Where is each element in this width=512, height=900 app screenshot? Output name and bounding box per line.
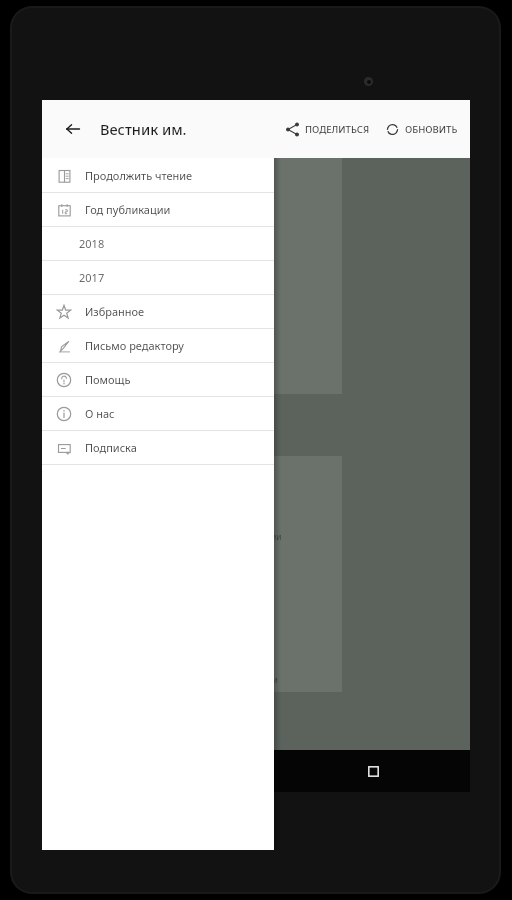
staticText: 2018 (79, 236, 105, 251)
staticText: Избранное (85, 304, 145, 319)
button[interactable]: Подписка (42, 431, 274, 464)
staticText: покенов при (198, 259, 251, 271)
staticText: Год публикации (85, 202, 171, 217)
button[interactable]: ОБНОВИТЬ (380, 115, 462, 144)
staticText: Помощь (85, 372, 131, 387)
staticText: Продолжить чтение (85, 168, 193, 183)
button[interactable]: О нас (42, 397, 274, 430)
button[interactable]: Recent apps (353, 751, 393, 791)
staticText: 2017 (79, 270, 105, 285)
staticText: номере: (198, 181, 234, 193)
staticText: 7/2018 (198, 461, 231, 475)
staticText: ионных пищевых (198, 324, 271, 336)
button[interactable]: Помощь (42, 363, 274, 396)
staticText: аундодифицита, (198, 285, 266, 297)
button[interactable]: Письмо редактору (42, 329, 274, 362)
button[interactable]: 2017 (42, 261, 274, 294)
staticText: ное 3d металлов (198, 220, 268, 232)
staticText: ПОДЕЛИТЬСЯ (305, 123, 370, 136)
button[interactable]: Год публикации (42, 193, 274, 226)
staticText: Письмо редактору (85, 338, 184, 353)
staticText: Подписка (85, 440, 137, 455)
staticText: ОБНОВИТЬ (405, 123, 458, 136)
staticText: О нас (85, 406, 115, 421)
staticText: Вестник им. акад. И.П. П… (100, 119, 190, 139)
button[interactable]: 2018 (42, 227, 274, 260)
button[interactable]: Избранное (42, 295, 274, 328)
staticText: чнальным развитии (198, 531, 282, 543)
button[interactable]: ПОДЕЛИТЬСЯ (280, 115, 374, 144)
staticText: электромиографии (198, 674, 278, 686)
button[interactable]: Back (56, 112, 90, 146)
button[interactable]: Продолжить чтение (42, 159, 274, 192)
button[interactable]: Home (236, 751, 276, 791)
